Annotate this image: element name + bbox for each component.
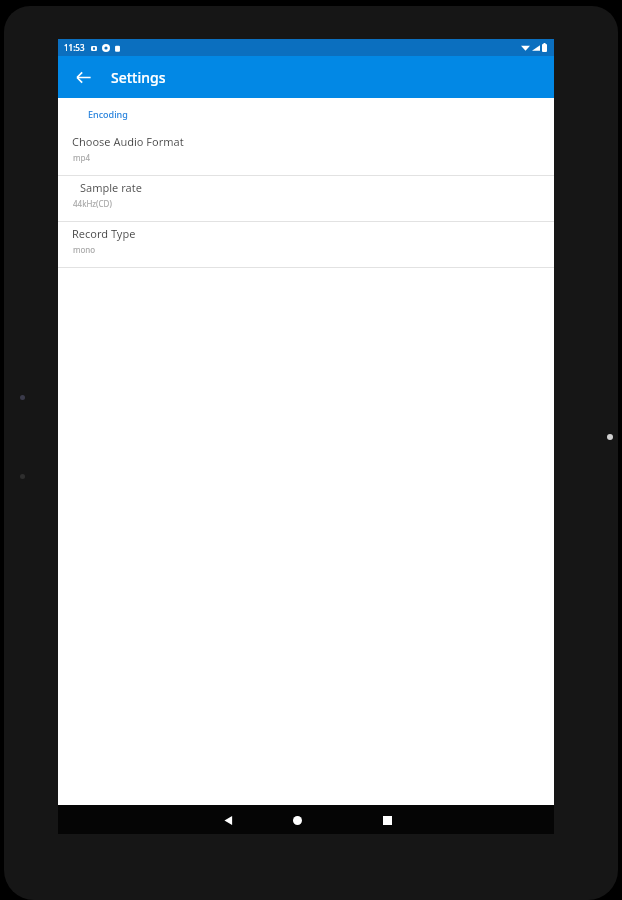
button[interactable]: Record Type <box>58 222 554 267</box>
button[interactable]: Choose Audio Format <box>58 130 554 175</box>
staticText: Encoding <box>88 108 128 120</box>
button[interactable]: Home <box>284 807 310 833</box>
staticText: 44kHz(CD) <box>73 198 112 209</box>
staticText: Record Type <box>72 226 136 241</box>
staticText: Settings <box>111 68 166 87</box>
staticText: 11:53 <box>64 42 85 53</box>
button[interactable]: Back <box>215 807 241 833</box>
staticText: mp4 <box>73 152 90 163</box>
button[interactable]: Recent apps <box>374 807 400 833</box>
button[interactable]: Sample rate <box>58 176 554 221</box>
staticText: Choose Audio Format <box>72 134 184 149</box>
button[interactable]: Back <box>68 62 98 92</box>
staticText: mono <box>73 244 96 255</box>
staticText: Sample rate <box>80 180 142 195</box>
